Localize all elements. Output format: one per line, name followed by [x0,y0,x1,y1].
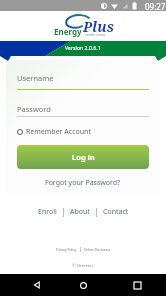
staticText: Plus [83,17,114,36]
staticText: Remember Account [26,127,91,137]
button[interactable]: Back [27,275,47,295]
staticText: Log in [72,152,95,162]
staticText: Energy [54,26,82,37]
staticText: © Sharetec [72,263,94,269]
button[interactable]: Contact [103,207,129,217]
button[interactable]: Enroll [38,207,57,217]
button[interactable]: Log in [17,145,149,169]
staticText: Username [17,73,54,83]
staticText: credit union [85,32,106,37]
button[interactable]: About [70,207,90,217]
button[interactable]: Forgot your Password? [45,178,121,188]
button[interactable]: Remember Account [17,127,91,137]
button[interactable]: Username [17,73,149,90]
button[interactable]: Recent apps [127,275,147,295]
staticText: 09:27 [145,1,166,12]
button[interactable]: Online Disclosure [84,248,111,252]
button[interactable]: Privacy Policy [56,248,77,252]
button[interactable]: Password [17,104,149,117]
staticText: Version 2.0.6.1 [65,44,101,51]
staticText: Password [17,104,51,114]
button[interactable]: Home [73,275,93,295]
